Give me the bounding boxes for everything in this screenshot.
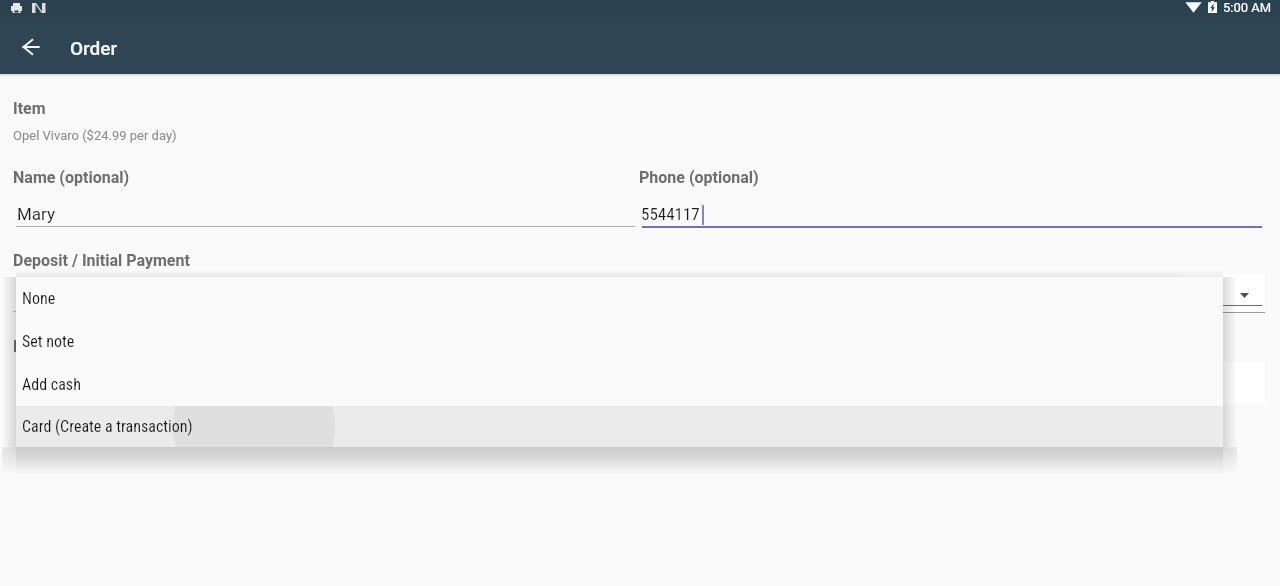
- button[interactable]: Card (Create a transaction): [16, 406, 1223, 447]
- button[interactable]: Amount: [1180, 362, 1265, 404]
- staticText: Mary: [17, 204, 56, 224]
- staticText: Opel Vivaro ($24.99 per day): [13, 128, 177, 143]
- staticText: 5544117: [641, 204, 700, 224]
- staticText: Name (optional): [13, 168, 130, 187]
- staticText: Order: [70, 37, 118, 59]
- staticText: 5:00 AM: [1223, 0, 1272, 15]
- staticText: Deposit / Initial Payment: [13, 251, 190, 270]
- staticText: Phone (optional): [639, 168, 759, 187]
- staticText: Set note: [22, 332, 75, 351]
- button[interactable]: Deposit type: [1180, 274, 1265, 314]
- staticText: Notes: [13, 337, 56, 356]
- staticText: Card (Create a transaction): [22, 417, 193, 436]
- staticText: Add cash: [22, 375, 81, 394]
- button[interactable]: None: [16, 277, 1223, 320]
- button[interactable]: Navigate up: [7, 23, 55, 71]
- button[interactable]: Add cash: [16, 363, 1223, 406]
- button[interactable]: Set note: [16, 320, 1223, 363]
- staticText: Item: [13, 99, 46, 118]
- staticText: None: [22, 289, 56, 308]
